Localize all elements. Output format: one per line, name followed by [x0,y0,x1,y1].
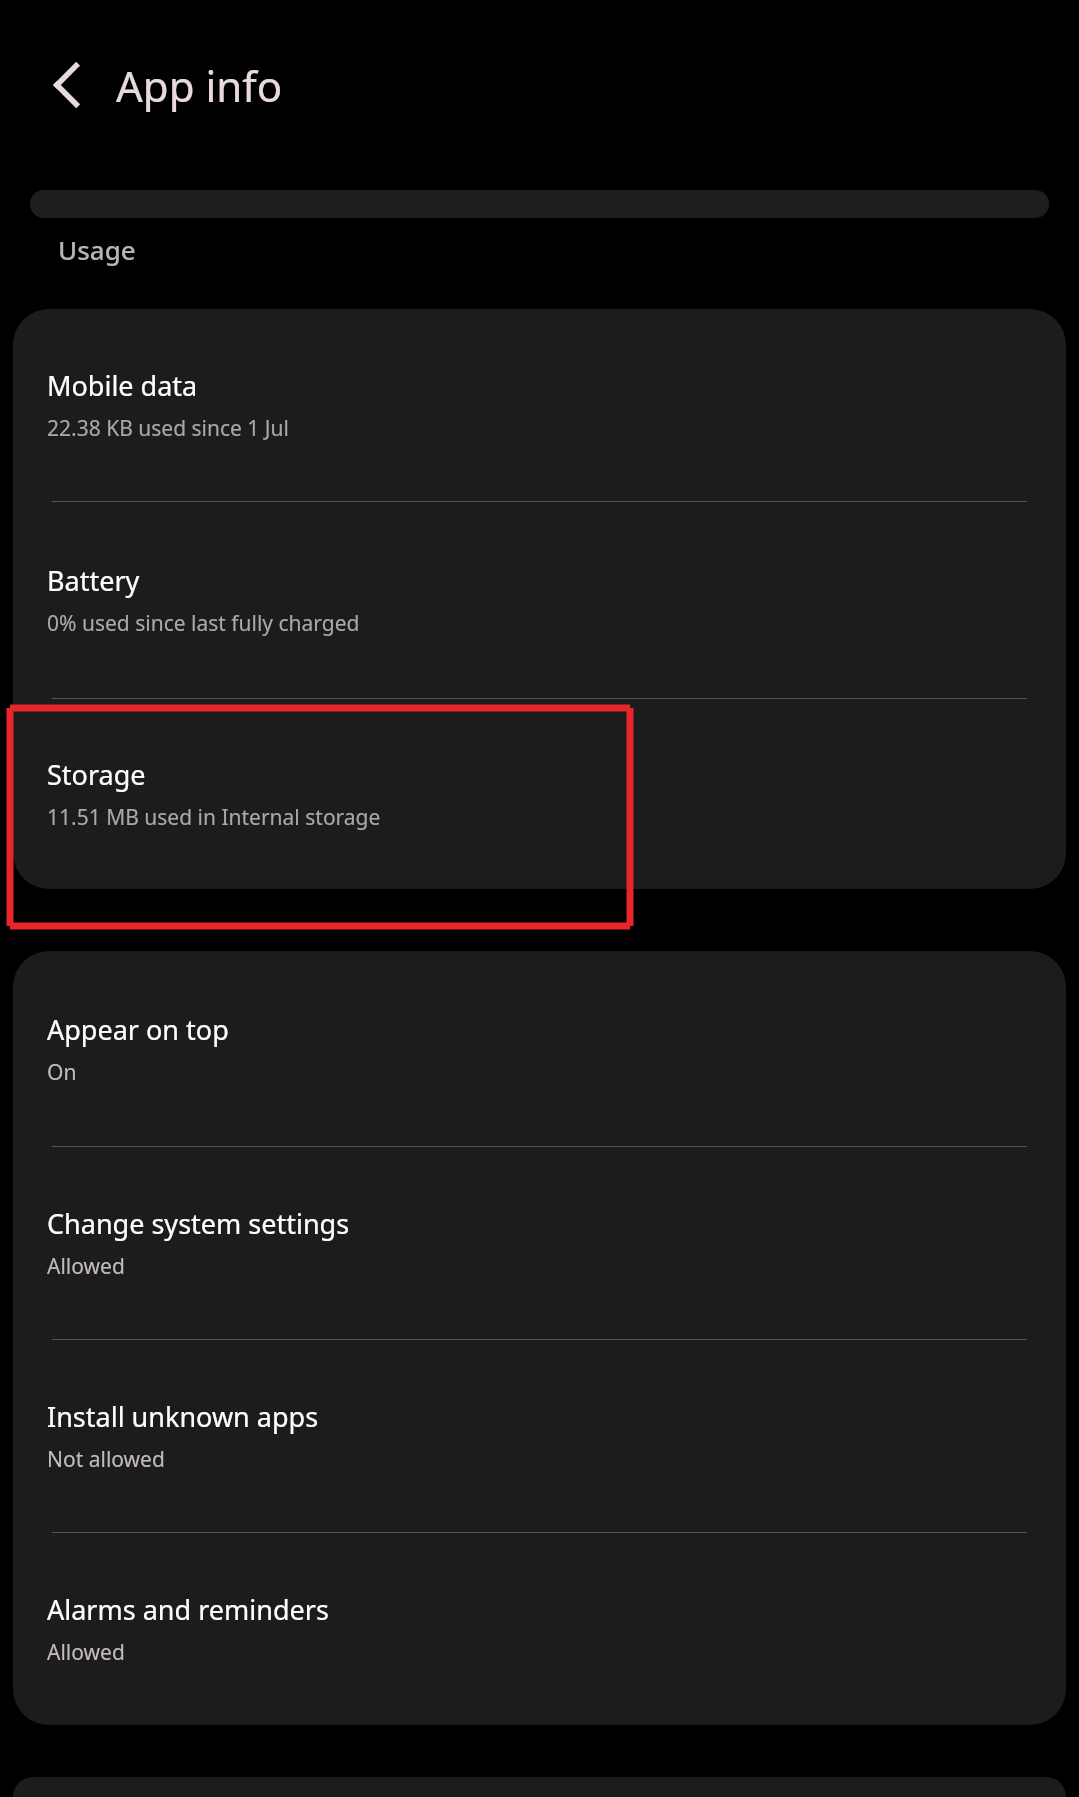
staticText: Install unknown apps [47,1398,319,1435]
button[interactable]: Install unknown apps [13,1340,1066,1532]
staticText: Appear on top [47,1011,229,1048]
button[interactable]: Storage [13,699,1066,889]
staticText: Allowed [47,1638,125,1667]
staticText: Storage [47,756,146,793]
button[interactable]: Alarms and reminders [13,1533,1066,1725]
button[interactable]: Appear on top [13,951,1066,1146]
staticText: 0% used since last fully charged [47,609,360,638]
staticText: 11.51 MB used in Internal storage [47,803,381,832]
button[interactable]: Change system settings [13,1147,1066,1339]
button[interactable]: Mobile data [13,309,1066,501]
staticText: Mobile data [47,367,198,404]
staticText: Not allowed [47,1445,165,1474]
button[interactable]: Back [36,54,98,116]
button[interactable]: Battery [13,502,1066,698]
staticText: Change system settings [47,1205,350,1242]
staticText: Usage [58,232,136,267]
staticText: Allowed [47,1252,125,1281]
staticText: App info [116,57,283,114]
staticText: On [47,1058,77,1087]
staticText: Alarms and reminders [47,1591,329,1628]
staticText: 22.38 KB used since 1 Jul [47,414,289,443]
staticText: Battery [47,562,140,599]
